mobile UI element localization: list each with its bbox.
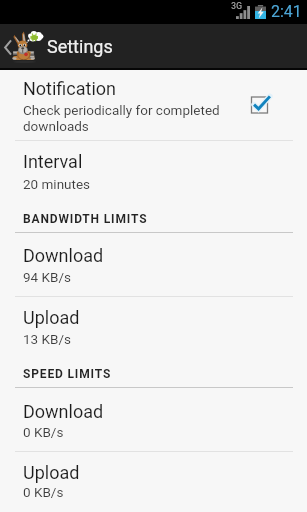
button[interactable] xyxy=(0,232,307,295)
staticText: 3G xyxy=(231,1,243,12)
staticText: Download xyxy=(23,401,104,422)
staticText: 0 KB/s xyxy=(23,424,64,440)
staticText: Interval xyxy=(23,151,83,172)
staticText: 2:41 xyxy=(271,2,302,21)
staticText: Notification xyxy=(23,78,117,99)
staticText: Settings xyxy=(47,36,113,57)
staticText: 94 KB/s xyxy=(23,269,71,285)
button[interactable] xyxy=(0,70,307,140)
button[interactable] xyxy=(0,451,307,508)
staticText: Upload xyxy=(23,462,80,483)
button[interactable] xyxy=(0,388,307,450)
staticText: Upload xyxy=(23,307,80,328)
button[interactable]: Navigate up xyxy=(0,24,44,68)
button[interactable] xyxy=(0,140,307,197)
staticText: Download xyxy=(23,245,104,266)
staticText: 0 KB/s xyxy=(23,484,64,500)
staticText: 13 KB/s xyxy=(23,331,71,347)
staticText: SPEED LIMITS xyxy=(23,367,112,381)
staticText: BANDWIDTH LIMITS xyxy=(23,212,148,226)
staticText: 20 minutes xyxy=(23,176,91,192)
button[interactable]: Notification enabled xyxy=(241,83,281,127)
staticText: Check periodically for completed downloa… xyxy=(23,102,220,134)
button[interactable] xyxy=(0,296,307,353)
